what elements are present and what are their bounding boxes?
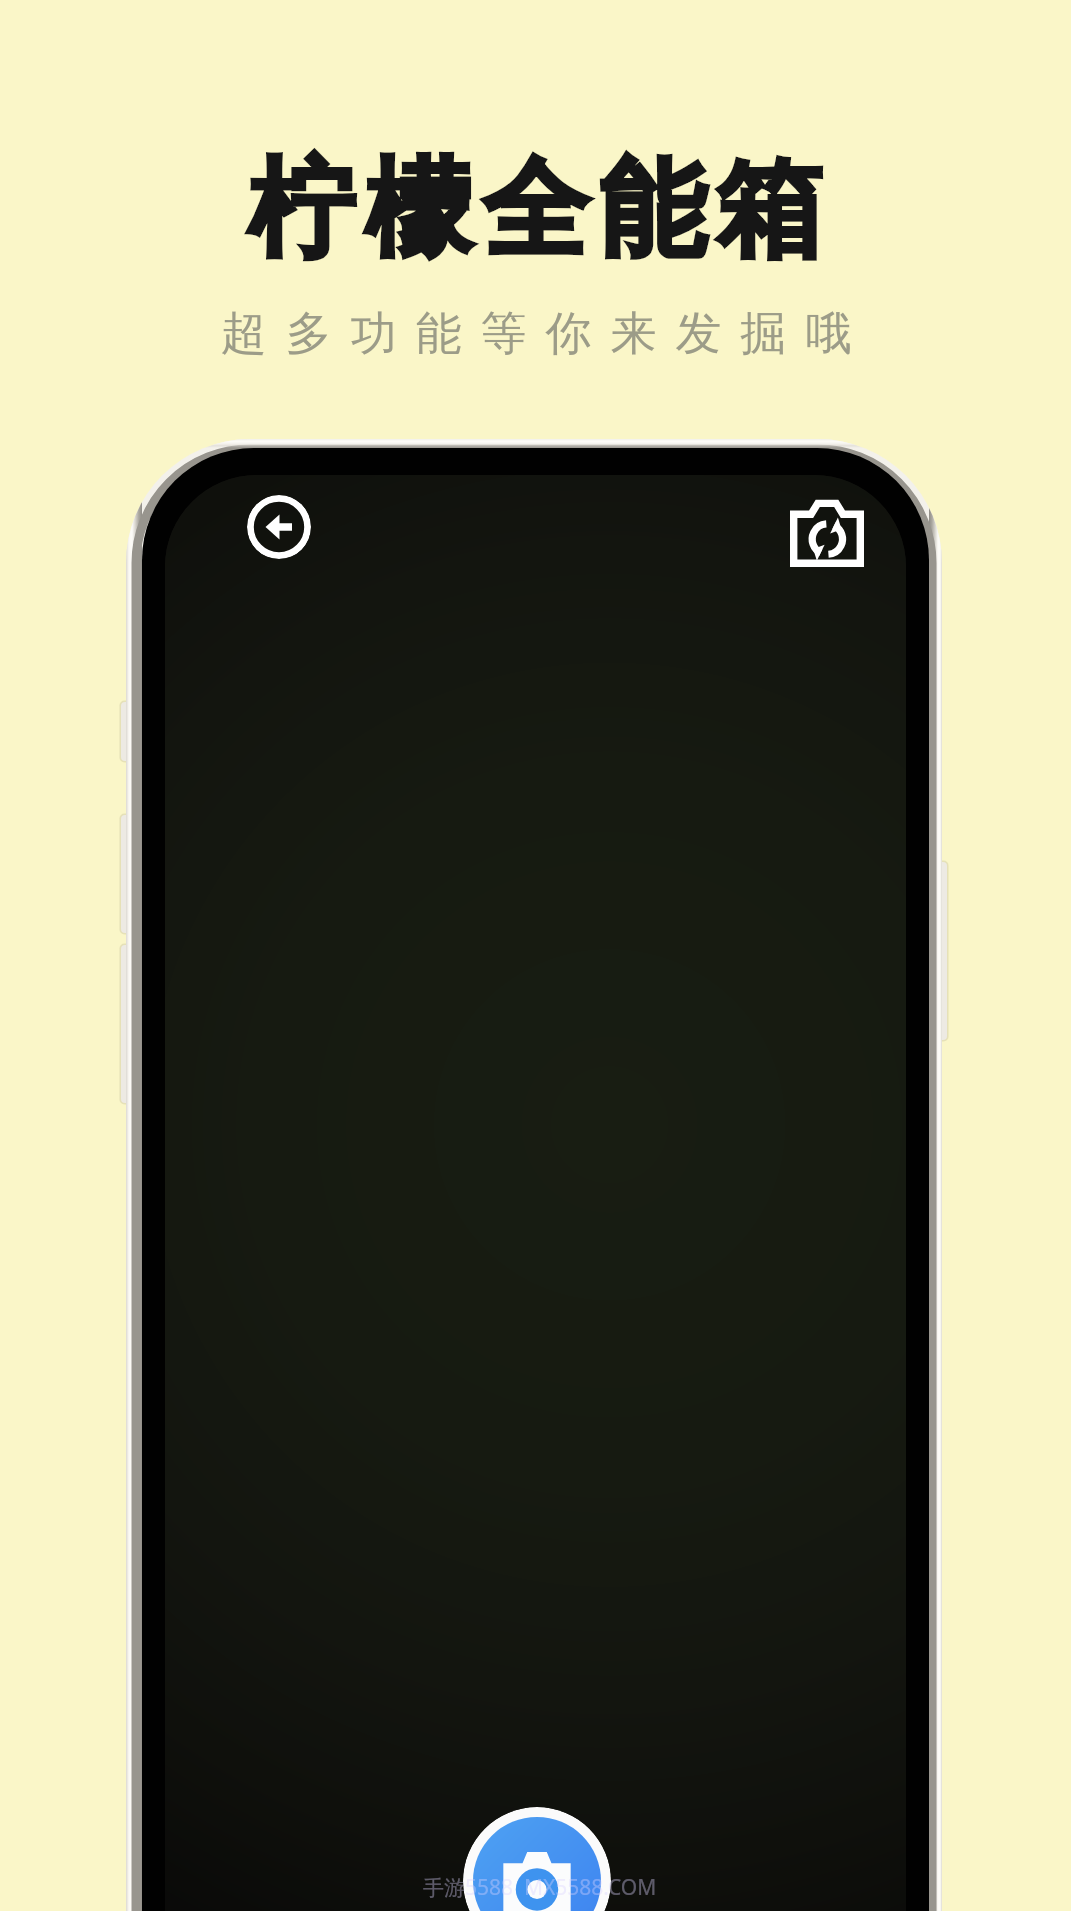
button[interactable]: Take photo: [463, 1807, 611, 1911]
button[interactable]: Back: [247, 495, 311, 559]
button[interactable]: Switch camera: [790, 499, 864, 567]
staticText: 超多功能等你来发掘哦: [211, 305, 861, 363]
staticText: 柠檬全能箱: [243, 143, 828, 278]
staticText: 手游5588 MX5588.COM: [423, 1873, 657, 1902]
